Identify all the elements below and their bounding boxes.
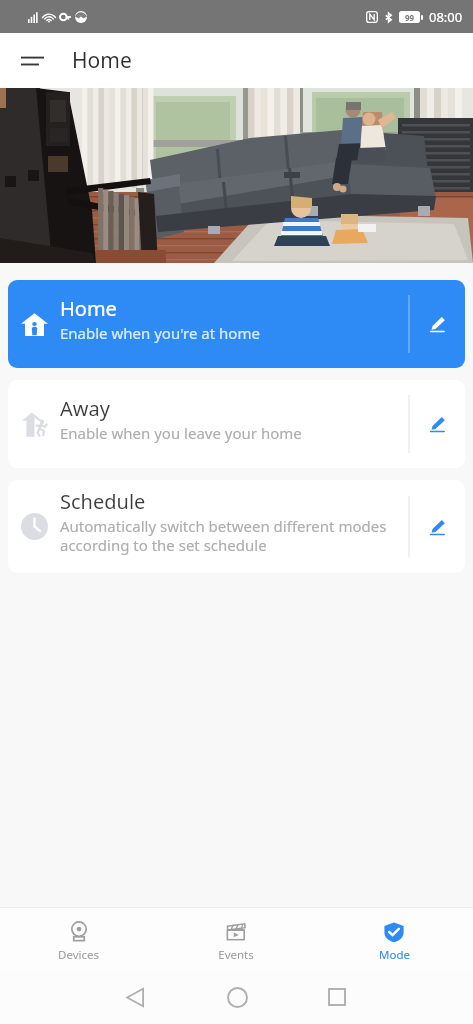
button[interactable]: Back: [111, 973, 159, 1021]
staticText: Mode: [379, 947, 410, 963]
staticText: Events: [218, 947, 254, 963]
button[interactable]: Menu: [8, 37, 56, 85]
staticText: Home: [72, 46, 132, 75]
staticText: Away: [60, 395, 110, 422]
staticText: Schedule: [60, 488, 146, 515]
staticText: 08:00: [429, 8, 463, 26]
button[interactable]: Recents: [313, 973, 361, 1021]
staticText: Home: [60, 295, 117, 322]
button[interactable]: Devices: [0, 908, 157, 970]
staticText: Automatically switch between different m…: [60, 516, 387, 555]
button[interactable]: Edit Schedule: [409, 480, 465, 573]
button[interactable]: Mode: [315, 908, 473, 970]
staticText: 99: [405, 12, 415, 23]
button[interactable]: Schedule: [8, 480, 465, 573]
staticText: Enable when you're at home: [60, 323, 260, 343]
staticText: Devices: [58, 947, 99, 963]
staticText: Enable when you leave your home: [60, 423, 302, 443]
button[interactable]: Events: [157, 908, 315, 970]
button[interactable]: Edit Home: [409, 280, 465, 368]
button[interactable]: Edit Away: [409, 380, 465, 468]
button[interactable]: Home: [213, 973, 261, 1021]
button[interactable]: Away: [8, 380, 465, 468]
button[interactable]: Home: [8, 280, 465, 368]
